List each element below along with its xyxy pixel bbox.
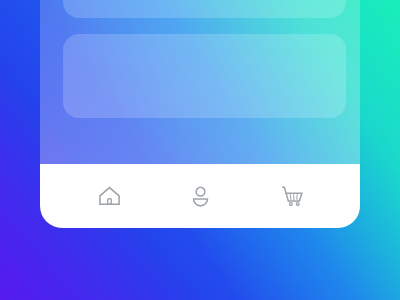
button[interactable]: Profile (177, 173, 223, 219)
button[interactable] (63, 0, 346, 18)
button[interactable]: Home (86, 173, 132, 219)
button[interactable]: Cart (269, 173, 315, 219)
button[interactable] (63, 34, 346, 118)
